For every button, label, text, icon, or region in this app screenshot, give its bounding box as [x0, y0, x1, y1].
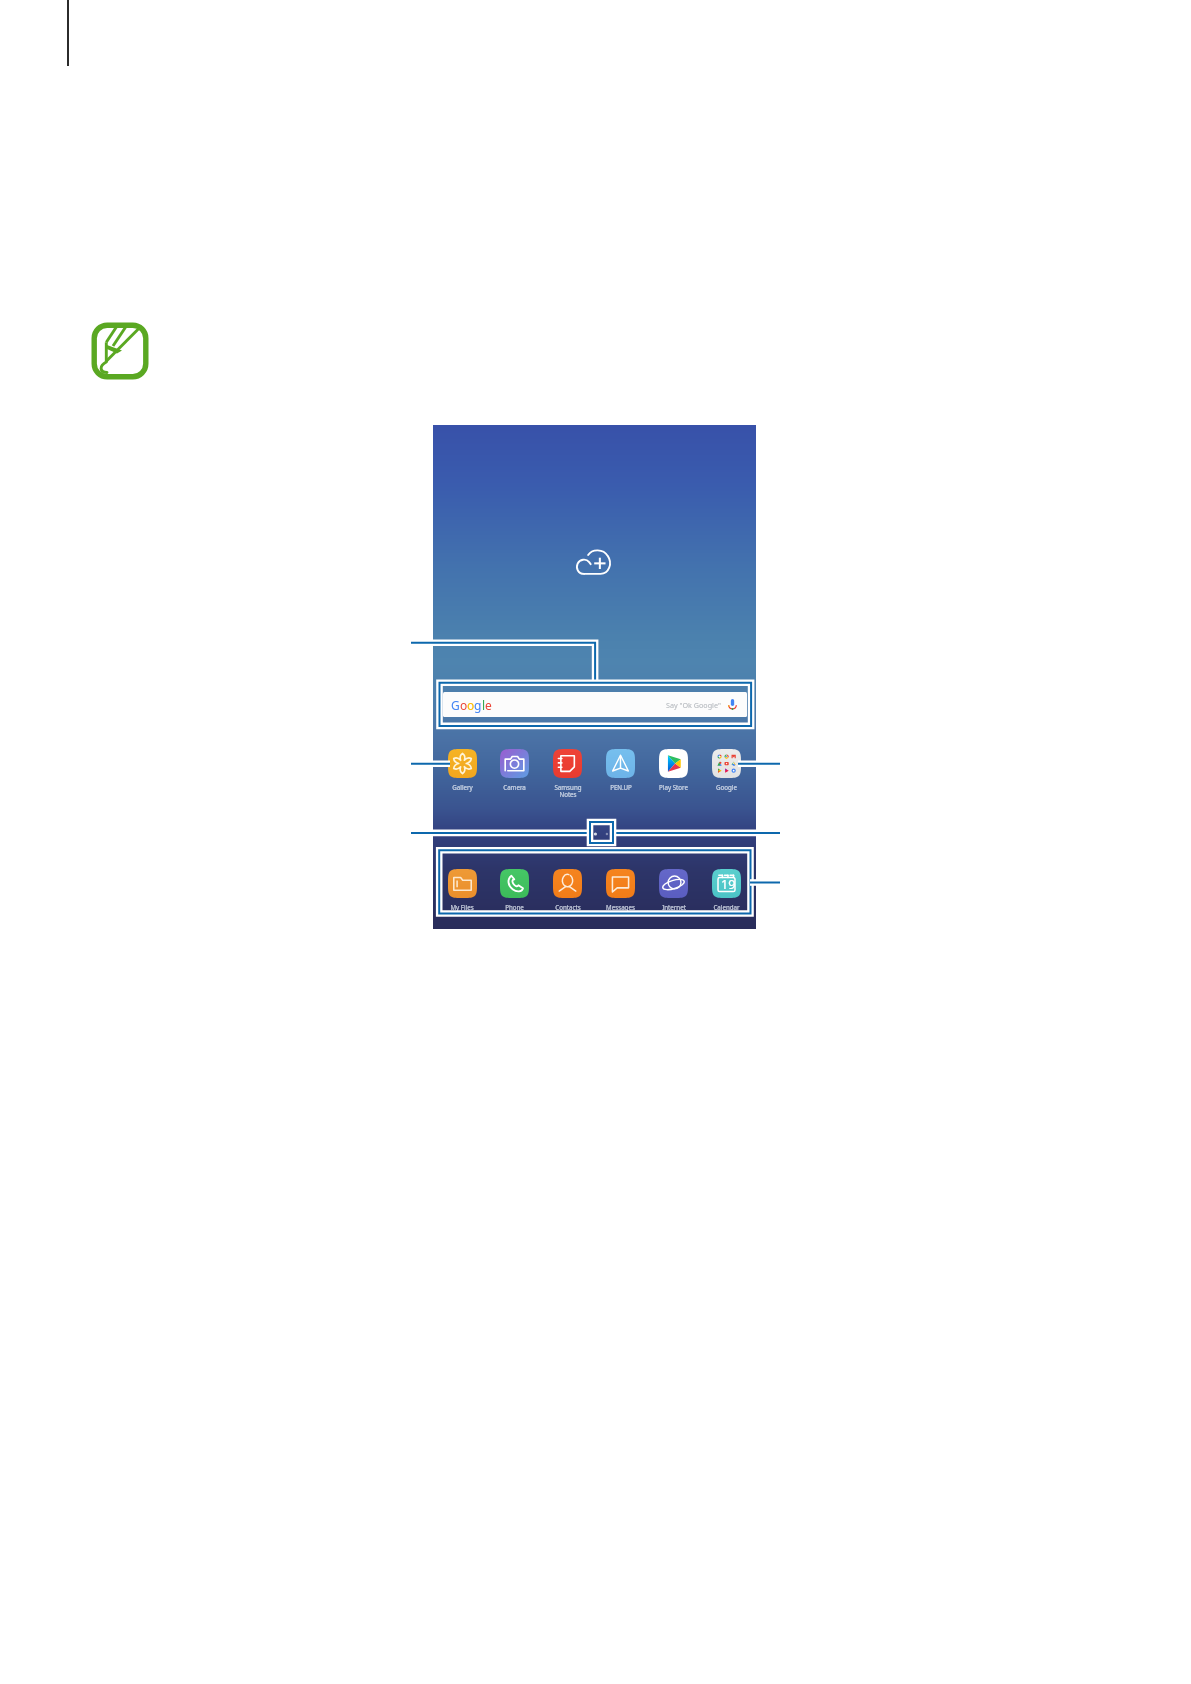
- staticText: Phone: [505, 903, 524, 911]
- staticText: e: [485, 697, 492, 713]
- staticText: Contacts: [555, 903, 581, 911]
- staticText: Camera: [503, 783, 526, 791]
- staticText: Play Store: [659, 783, 688, 791]
- button[interactable]: G: [443, 692, 747, 717]
- staticText: o: [467, 697, 474, 713]
- button[interactable]: Phone: [488, 869, 541, 911]
- button[interactable]: Home screen page indicator: [591, 830, 611, 838]
- button[interactable]: Contacts: [541, 869, 594, 911]
- staticText: Calendar: [713, 903, 740, 911]
- button[interactable]: Google: [700, 749, 753, 791]
- staticText: PEN.UP: [610, 783, 632, 791]
- staticText: o: [460, 697, 467, 713]
- button[interactable]: Internet: [647, 869, 700, 911]
- button[interactable]: Gallery: [436, 749, 488, 791]
- button[interactable]: Add to Samsung Cloud: [575, 548, 613, 575]
- staticText: 19: [721, 876, 736, 893]
- button[interactable]: Note: [91, 322, 149, 380]
- staticText: Messages: [606, 903, 635, 911]
- button[interactable]: Messages: [594, 869, 647, 911]
- staticText: Google: [716, 783, 737, 791]
- staticText: Gallery: [452, 783, 473, 791]
- button[interactable]: 19: [700, 869, 753, 911]
- staticText: G: [451, 697, 460, 713]
- staticText: g: [474, 697, 482, 713]
- staticText: l: [482, 697, 485, 713]
- button[interactable]: Samsung Notes: [541, 749, 594, 799]
- staticText: Internet: [662, 903, 686, 911]
- button[interactable]: Voice search: [722, 693, 743, 716]
- staticText: Say "Ok Google": [666, 700, 721, 710]
- staticText: Samsung Notes: [554, 783, 582, 799]
- button[interactable]: Play Store: [647, 749, 700, 791]
- staticText: My Files: [450, 903, 474, 911]
- button[interactable]: My Files: [436, 869, 488, 911]
- button[interactable]: Camera: [488, 749, 541, 791]
- button[interactable]: PEN.UP: [594, 749, 647, 791]
